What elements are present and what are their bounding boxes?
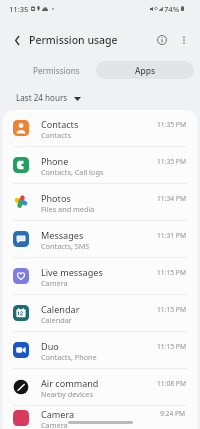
button[interactable]: Contacts <box>3 110 197 146</box>
staticText: 11:35 PM <box>157 120 186 129</box>
staticText: Contacts <box>41 130 71 140</box>
staticText: Files and media <box>41 204 95 214</box>
staticText: 11:35 <box>9 4 29 14</box>
staticText: Camera <box>41 278 68 288</box>
staticText: 11:35 PM <box>157 157 186 166</box>
staticText: Nearby devices <box>41 389 93 399</box>
button[interactable]: Calendar <box>3 295 197 331</box>
button[interactable]: Navigate up <box>5 28 29 52</box>
button[interactable]: Camera <box>3 406 197 429</box>
button[interactable]: Photos <box>3 184 197 220</box>
staticText: 74% <box>164 4 180 14</box>
staticText: 11:34 PM <box>157 194 186 203</box>
staticText: Photos <box>41 192 71 204</box>
staticText: Last 24 hours <box>16 92 68 103</box>
staticText: Calendar <box>41 303 80 315</box>
button[interactable]: Last 24 hours <box>13 90 84 105</box>
staticText: Camera <box>41 420 68 429</box>
staticText: Calendar <box>41 315 72 325</box>
staticText: Apps <box>135 65 155 76</box>
button[interactable]: Live messages <box>3 258 197 294</box>
staticText: Air command <box>41 377 99 389</box>
staticText: Messages <box>41 229 84 241</box>
staticText: Contacts, SMS <box>41 241 90 251</box>
staticText: Contacts, Phone <box>41 352 97 362</box>
staticText: Contacts, Call logs <box>41 167 104 177</box>
staticText: 11:08 PM <box>157 379 186 388</box>
button[interactable]: More options <box>173 29 195 51</box>
button[interactable]: Phone <box>3 147 197 183</box>
staticText: 11:15 PM <box>157 268 186 277</box>
button[interactable]: Messages <box>3 221 197 257</box>
staticText: Contacts <box>41 118 79 130</box>
staticText: Camera <box>41 408 75 420</box>
staticText: Duo <box>41 340 59 352</box>
staticText: Permissions <box>33 65 80 76</box>
staticText: 9:24 PM <box>160 409 186 418</box>
button[interactable]: Air command <box>3 369 197 405</box>
staticText: Live messages <box>41 266 103 278</box>
staticText: 11:31 PM <box>157 231 186 240</box>
button[interactable]: Duo <box>3 332 197 368</box>
staticText: Phone <box>41 155 69 167</box>
staticText: Permission usage <box>29 33 118 47</box>
staticText: 11:15 PM <box>157 342 186 351</box>
button[interactable]: Information <box>151 29 173 51</box>
staticText: 11:15 PM <box>157 305 186 314</box>
button[interactable]: Permissions <box>7 61 105 79</box>
button[interactable]: Apps <box>96 61 194 79</box>
